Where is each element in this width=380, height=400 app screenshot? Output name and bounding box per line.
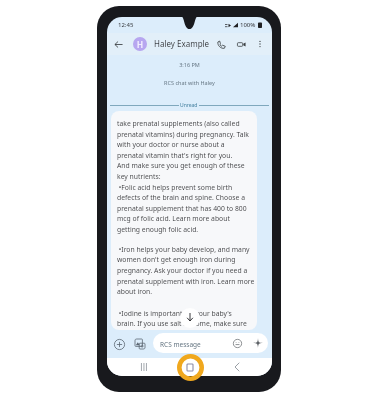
- button[interactable]: Share image: [133, 337, 147, 351]
- button[interactable]: [153, 333, 268, 353]
- staticText: •Iodine is important for your baby's: [117, 309, 232, 318]
- button[interactable]: Home screen: [182, 359, 198, 375]
- staticText: 100%: [240, 21, 256, 29]
- button[interactable]: Video call: [234, 37, 248, 51]
- staticText: key nutrients:: [117, 172, 161, 181]
- button[interactable]: Voice message: [252, 337, 264, 349]
- button[interactable]: Back: [111, 37, 125, 51]
- staticText: prenatal supplement with iron. Learn mor…: [117, 277, 255, 286]
- button[interactable]: Add attachment: [112, 337, 126, 351]
- staticText: pregnancy. Ask your doctor if you need a: [117, 266, 248, 275]
- button[interactable]: take prenatal supplements (also called: [111, 111, 257, 330]
- staticText: H: [137, 39, 143, 50]
- staticText: And make sure you get enough of these: [117, 161, 245, 170]
- staticText: 3:16 PM: [107, 61, 272, 68]
- staticText: 12:45: [118, 21, 134, 29]
- button[interactable]: Navigate back: [229, 359, 245, 375]
- staticText: •Folic acid helps prevent some birth: [117, 183, 233, 192]
- staticText: prenatal vitamins) during pregnancy. Tal…: [117, 130, 249, 139]
- button[interactable]: Home: [177, 354, 204, 381]
- button[interactable]: Haley Example: [154, 38, 210, 49]
- staticText: take prenatal supplements (also called: [117, 119, 240, 128]
- staticText: defects of the brain and spine. Choose a: [117, 193, 245, 202]
- button[interactable]: Contact photo: [133, 37, 147, 51]
- button[interactable]: Emoji: [231, 337, 243, 349]
- button[interactable]: Recent apps: [136, 359, 152, 375]
- staticText: with your doctor or nurse about a: [117, 140, 225, 149]
- button[interactable]: Scroll to bottom: [180, 308, 200, 328]
- staticText: Unread: [180, 102, 198, 109]
- staticText: RCS message: [160, 340, 201, 349]
- staticText: women don't get enough iron during: [117, 255, 236, 264]
- staticText: prenatal supplement that has 400 to 800: [117, 204, 247, 213]
- staticText: prenatal vitamin that's right for you.: [117, 151, 233, 160]
- button[interactable]: More options: [253, 37, 267, 51]
- button[interactable]: Call: [214, 37, 228, 51]
- staticText: RCS chat with Haley: [107, 79, 272, 86]
- staticText: getting enough folic acid.: [117, 225, 199, 234]
- staticText: brain. If you use salt at home, make sur…: [117, 319, 247, 328]
- staticText: •Iron helps your baby develop, and many: [117, 245, 250, 254]
- staticText: about iron.: [117, 287, 153, 296]
- staticText: mcg of folic acid. Learn more about: [117, 214, 230, 223]
